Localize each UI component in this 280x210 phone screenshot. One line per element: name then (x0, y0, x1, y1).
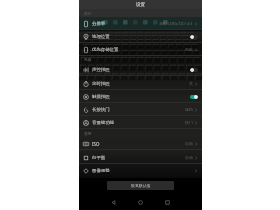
staticText: 图像调整 (92, 168, 110, 174)
staticText: 自动 (185, 141, 193, 146)
staticText: 地理位置 (92, 34, 110, 40)
staticText: 关 (189, 81, 193, 86)
staticText: 定时拍照 (92, 81, 110, 87)
staticText: 白平衡 (92, 155, 106, 161)
staticText: 通用 (84, 131, 92, 136)
staticText: 恢复默认值 (131, 183, 151, 188)
staticText: 视频 (84, 57, 92, 62)
button[interactable]: 长按快门 (79, 103, 202, 116)
staticText: 长按快门 (92, 107, 110, 113)
staticText: 连拍 (185, 107, 193, 112)
button[interactable]: ISO (79, 137, 202, 150)
button[interactable]: Home (127, 194, 154, 210)
button[interactable]: 分辨率 (79, 17, 202, 30)
button[interactable]: 触摸拍照 (79, 90, 202, 103)
button[interactable]: 声控拍照 (79, 63, 202, 76)
button[interactable]: 白平衡 (79, 151, 202, 164)
button[interactable]: 定时拍照 (79, 77, 202, 90)
staticText: 声控拍照 (92, 67, 110, 73)
staticText: 设置 (136, 2, 146, 8)
button[interactable]: 图像调整 (79, 164, 202, 177)
button[interactable]: Back (100, 194, 127, 210)
button[interactable]: Recents (154, 194, 181, 210)
button[interactable]: 恢复默认值 (107, 181, 174, 190)
staticText: ISO (92, 141, 100, 147)
button[interactable]: 地理位置 (79, 30, 202, 43)
staticText: 触摸拍照 (92, 94, 110, 100)
staticText: 照片 (84, 11, 92, 16)
staticText: 自动 (185, 155, 193, 160)
staticText: 快门 (185, 120, 193, 125)
button[interactable]: 优先存储位置 (79, 43, 202, 56)
staticText: 音量键功能 (92, 120, 114, 126)
button[interactable]: 音量键功能 (79, 116, 202, 129)
staticText: 3M (1280x720) 4:3 (159, 21, 193, 26)
staticText: 优先存储位置 (92, 47, 119, 53)
staticText: 分辨率 (92, 21, 106, 27)
staticText: 内存 (185, 47, 193, 52)
